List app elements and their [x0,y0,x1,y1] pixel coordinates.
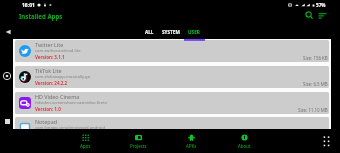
staticText: com.lynapp.simplenotepad.android [35,125,105,131]
staticText: Notepad [35,118,57,125]
staticText: Twitter Lite [35,41,64,48]
staticText: USER [188,29,200,35]
staticText: Apps [80,143,91,149]
staticText: Size: 3.2 MB [303,132,328,138]
button[interactable]: Sort [317,10,328,21]
button[interactable]: Notepad [15,117,329,139]
staticText: hdvideo.screenshare.castvideo.firetv [35,100,107,106]
staticText: com.twitter.android.lite [35,48,81,54]
button[interactable]: APKs [165,129,218,153]
staticText: 16:01 [22,2,35,9]
staticText: APKs [186,143,197,149]
staticText: TikTok Lite [35,67,62,74]
button[interactable]: Projects [112,129,165,153]
staticText: About [238,143,251,149]
button[interactable]: About [218,129,271,153]
staticText: Installed Apps [19,12,63,20]
button[interactable]: Search [303,10,315,21]
button[interactable]: ALL [136,26,162,39]
staticText: com.zhiliaoapp.musically.go [35,74,91,80]
button[interactable]: Installed Apps [19,12,63,20]
button[interactable]: USER [181,26,207,39]
button[interactable]: Recents [1,115,13,127]
button[interactable]: Apps [59,129,112,153]
staticText: Version: 3.1.1 [35,54,65,60]
button[interactable]: HD Video Cinema [15,92,329,114]
button[interactable]: Back [2,26,14,38]
staticText: Size: 11.10 MB [298,107,328,113]
staticText: Version: 1.0 [35,106,61,112]
button[interactable]: SYSTEM [158,26,184,39]
staticText: ALL [145,29,154,35]
staticText: Size: 156 KB [303,55,328,61]
staticText: SYSTEM [162,29,180,35]
staticText: Projects [130,143,147,149]
staticText: Version: 24.2.2 [35,80,68,86]
staticText: 57% [316,2,326,8]
button[interactable]: Home [1,70,13,82]
button[interactable]: Twitter Lite [15,40,329,62]
staticText: Size: 6.5 MB [303,81,328,87]
button[interactable]: Overview [320,134,333,147]
staticText: HD Video Cinema [35,93,80,100]
button[interactable]: TikTok Lite [15,66,329,88]
